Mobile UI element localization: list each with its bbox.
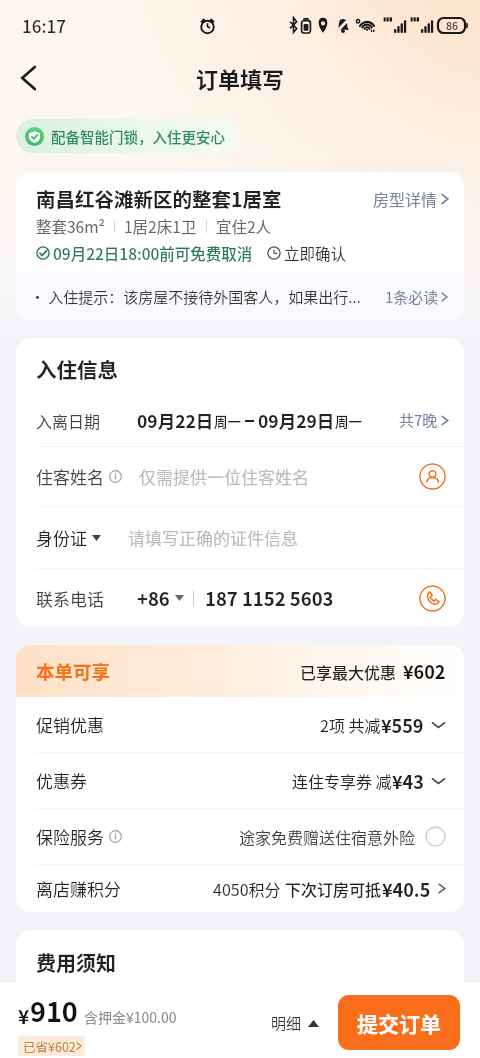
button[interactable]: 住客姓名 — [16, 447, 464, 506]
staticText: 南昌红谷滩新区的整套1居室 — [36, 184, 282, 212]
staticText: 离店赚积分 — [36, 876, 121, 901]
button[interactable]: 房型详情 — [373, 187, 449, 210]
staticText: 4050积分 — [213, 877, 285, 900]
staticText: 09月29日 — [258, 408, 335, 433]
staticText: 周一 — [335, 411, 362, 431]
staticText: +86 — [137, 585, 170, 612]
staticText: 910 — [30, 991, 78, 1030]
staticText: ¥ — [18, 1002, 30, 1030]
staticText: 宜住2人 — [216, 215, 272, 237]
staticText: • 入住提示：该房屋不接待外国客人，如果出行... — [30, 286, 361, 308]
staticText: ¥602 — [403, 658, 446, 684]
button[interactable]: 优惠券 — [16, 753, 464, 808]
button[interactable]: 联系电话 — [16, 569, 464, 627]
button[interactable]: Toggle insurance — [425, 826, 446, 847]
staticText: 费用须知 — [36, 948, 116, 977]
button[interactable]: Call — [419, 585, 446, 612]
staticText: 房型详情 — [373, 187, 438, 210]
staticText: 187 1152 5603 — [205, 585, 334, 612]
staticText: 09月22日18:00前可免费取消 — [53, 242, 253, 264]
staticText: 09月22日 — [137, 408, 214, 433]
staticText: 2项 共减 — [320, 713, 381, 736]
button[interactable]: 提交订单 — [338, 995, 460, 1050]
staticText: 联系电话 — [36, 586, 104, 611]
staticText: 1条必读 — [385, 286, 439, 308]
button[interactable]: 已省¥602 — [18, 1036, 85, 1056]
button[interactable]: 身份证 — [16, 507, 464, 568]
staticText: 配备智能门锁，入住更安心 — [51, 126, 225, 147]
staticText: 住客姓名 — [36, 464, 104, 489]
staticText: 本单可享 — [36, 658, 111, 685]
staticText: 请填写正确的证件信息 — [128, 525, 298, 550]
button[interactable]: Back — [6, 56, 50, 100]
staticText: 保险服务 — [36, 824, 104, 849]
button[interactable]: 离店赚积分 — [16, 865, 464, 912]
staticText: 已享最大优惠 — [300, 660, 397, 683]
staticText: 共7晚 — [399, 409, 438, 431]
staticText: 86 — [446, 18, 458, 33]
staticText: 已省¥602 — [23, 1037, 76, 1055]
staticText: 身份证 — [36, 525, 87, 550]
staticText: 含押金¥100.00 — [84, 1007, 177, 1027]
staticText: 提交订单 — [357, 1008, 441, 1038]
button[interactable]: 明细 — [271, 1012, 319, 1034]
staticText: 途家免费赠送住宿意外险 — [239, 825, 416, 848]
button[interactable]: • 入住提示：该房屋不接待外国客人，如果出行... — [16, 273, 464, 321]
button[interactable]: 入离日期 — [16, 394, 464, 446]
staticText: 明细 — [271, 1012, 302, 1034]
staticText: 下次订房可抵 — [285, 877, 382, 900]
staticText: 促销优惠 — [36, 712, 104, 737]
staticText: 16:17 — [22, 13, 66, 38]
staticText: 订单填写 — [196, 62, 285, 94]
staticText: 仅需提供一位住客姓名 — [139, 464, 309, 489]
staticText: 立即确认 — [284, 242, 347, 264]
staticText: ¥43 — [392, 768, 424, 794]
staticText: 周一 — [214, 411, 241, 431]
button[interactable]: 保险服务 — [16, 809, 464, 864]
staticText: 入住信息 — [36, 354, 118, 384]
staticText: 整套36m² — [36, 215, 105, 237]
staticText: 入离日期 — [36, 409, 101, 432]
button[interactable]: 促销优惠 — [16, 697, 464, 752]
staticText: ¥40.5 — [382, 876, 431, 902]
staticText: 1居2床1卫 — [124, 215, 197, 237]
staticText: 优惠券 — [36, 768, 87, 793]
button[interactable]: 配备智能门锁，入住更安心 — [16, 119, 239, 153]
staticText: 连住专享券 减 — [292, 769, 392, 792]
button[interactable]: Pick guest — [419, 463, 446, 490]
staticText: ¥559 — [381, 712, 424, 738]
